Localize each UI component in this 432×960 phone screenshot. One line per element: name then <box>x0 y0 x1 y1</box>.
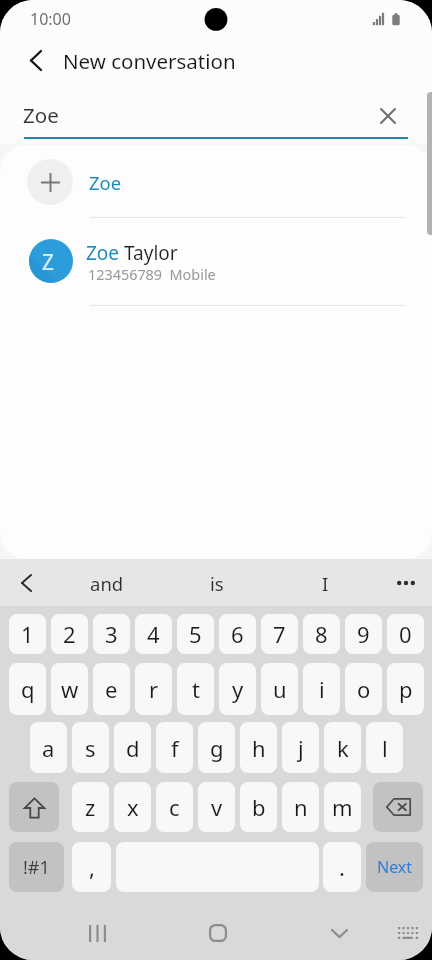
button[interactable]: d <box>114 722 151 773</box>
button[interactable]: w <box>51 663 88 715</box>
staticText: a <box>42 733 55 763</box>
button[interactable]: i <box>303 663 340 715</box>
staticText: 5 <box>189 619 202 649</box>
button[interactable]: p <box>387 663 424 715</box>
staticText: 4 <box>147 619 160 649</box>
button[interactable]: e <box>93 663 130 715</box>
staticText: p <box>399 674 413 704</box>
staticText: , <box>89 852 95 882</box>
staticText: !#1 <box>23 855 50 880</box>
button[interactable]: Backspace <box>373 782 423 832</box>
staticText: 3 <box>105 619 118 649</box>
staticText: z <box>85 792 96 822</box>
staticText: m <box>332 792 353 822</box>
button[interactable]: q <box>9 663 46 715</box>
button[interactable]: and <box>59 559 155 606</box>
staticText: q <box>21 674 35 704</box>
button[interactable]: Next <box>366 842 423 892</box>
staticText: h <box>252 733 266 763</box>
staticText: l <box>382 733 388 763</box>
button[interactable]: 3 <box>93 614 130 654</box>
button[interactable]: y <box>219 663 256 715</box>
button[interactable]: 4 <box>135 614 172 654</box>
button[interactable]: , <box>72 842 111 892</box>
staticText: 7 <box>273 619 286 649</box>
button[interactable]: z <box>72 782 109 832</box>
button[interactable]: More options <box>388 559 424 606</box>
button[interactable]: 1 <box>9 614 46 654</box>
button[interactable]: s <box>72 722 109 773</box>
staticText: i <box>319 674 325 704</box>
staticText: y <box>232 674 244 704</box>
button[interactable]: Keyboard layout <box>384 909 432 957</box>
button[interactable]: k <box>324 722 361 773</box>
button[interactable]: 7 <box>261 614 298 654</box>
button[interactable]: r <box>135 663 172 715</box>
button[interactable]: l <box>366 722 403 773</box>
button[interactable]: u <box>261 663 298 715</box>
staticText: b <box>252 792 266 822</box>
button[interactable]: c <box>156 782 193 832</box>
staticText: x <box>127 792 139 822</box>
button[interactable]: Z <box>0 217 432 305</box>
button[interactable]: o <box>345 663 382 715</box>
button[interactable]: is <box>169 559 265 606</box>
staticText: 10:00 <box>30 8 71 30</box>
button[interactable]: Home <box>194 909 242 957</box>
button[interactable]: a <box>30 722 67 773</box>
button[interactable]: 5 <box>177 614 214 654</box>
button[interactable]: !#1 <box>9 842 64 892</box>
staticText: u <box>273 674 287 704</box>
button[interactable]: h <box>240 722 277 773</box>
staticText: o <box>357 674 371 704</box>
staticText: k <box>337 733 349 763</box>
button[interactable]: 0 <box>387 614 424 654</box>
button[interactable]: Clear text <box>368 96 408 136</box>
staticText: r <box>149 674 159 704</box>
button[interactable]: . <box>323 842 361 892</box>
staticText: . <box>339 852 345 882</box>
button[interactable]: g <box>198 722 235 773</box>
staticText: Zoe <box>89 170 122 195</box>
button[interactable]: Hide keyboard <box>315 909 363 957</box>
button[interactable]: Previous suggestions <box>8 559 44 606</box>
staticText: w <box>61 674 79 704</box>
button[interactable]: f <box>156 722 193 773</box>
staticText: 6 <box>231 619 244 649</box>
staticText: e <box>105 674 118 704</box>
button[interactable]: m <box>324 782 361 832</box>
staticText: 0 <box>399 619 412 649</box>
staticText: n <box>294 792 308 822</box>
staticText: I <box>322 571 329 596</box>
staticText: s <box>85 733 96 763</box>
button[interactable]: I <box>277 559 373 606</box>
button[interactable]: j <box>282 722 319 773</box>
button[interactable]: Shift <box>9 782 59 832</box>
button[interactable]: 9 <box>345 614 382 654</box>
staticText: and <box>90 571 124 596</box>
staticText: t <box>192 674 200 704</box>
staticText: 9 <box>357 619 370 649</box>
button[interactable]: t <box>177 663 214 715</box>
staticText: Zoe Taylor <box>86 240 178 266</box>
button[interactable]: Zoe <box>0 145 432 217</box>
button[interactable]: n <box>282 782 319 832</box>
button[interactable]: 6 <box>219 614 256 654</box>
staticText: 1 <box>21 619 34 649</box>
staticText: d <box>126 733 140 763</box>
button[interactable]: v <box>198 782 235 832</box>
staticText: 123456789 Mobile <box>88 265 216 285</box>
staticText: 2 <box>63 619 76 649</box>
staticText: is <box>210 571 224 596</box>
staticText: j <box>298 733 304 763</box>
button[interactable]: 2 <box>51 614 88 654</box>
button[interactable]: x <box>114 782 151 832</box>
button[interactable]: Recent apps <box>73 909 121 957</box>
button[interactable]: b <box>240 782 277 832</box>
button[interactable]: Back <box>14 39 57 82</box>
staticText: 8 <box>315 619 328 649</box>
button[interactable]: 8 <box>303 614 340 654</box>
staticText: New conversation <box>63 47 236 75</box>
staticText: v <box>211 792 223 822</box>
